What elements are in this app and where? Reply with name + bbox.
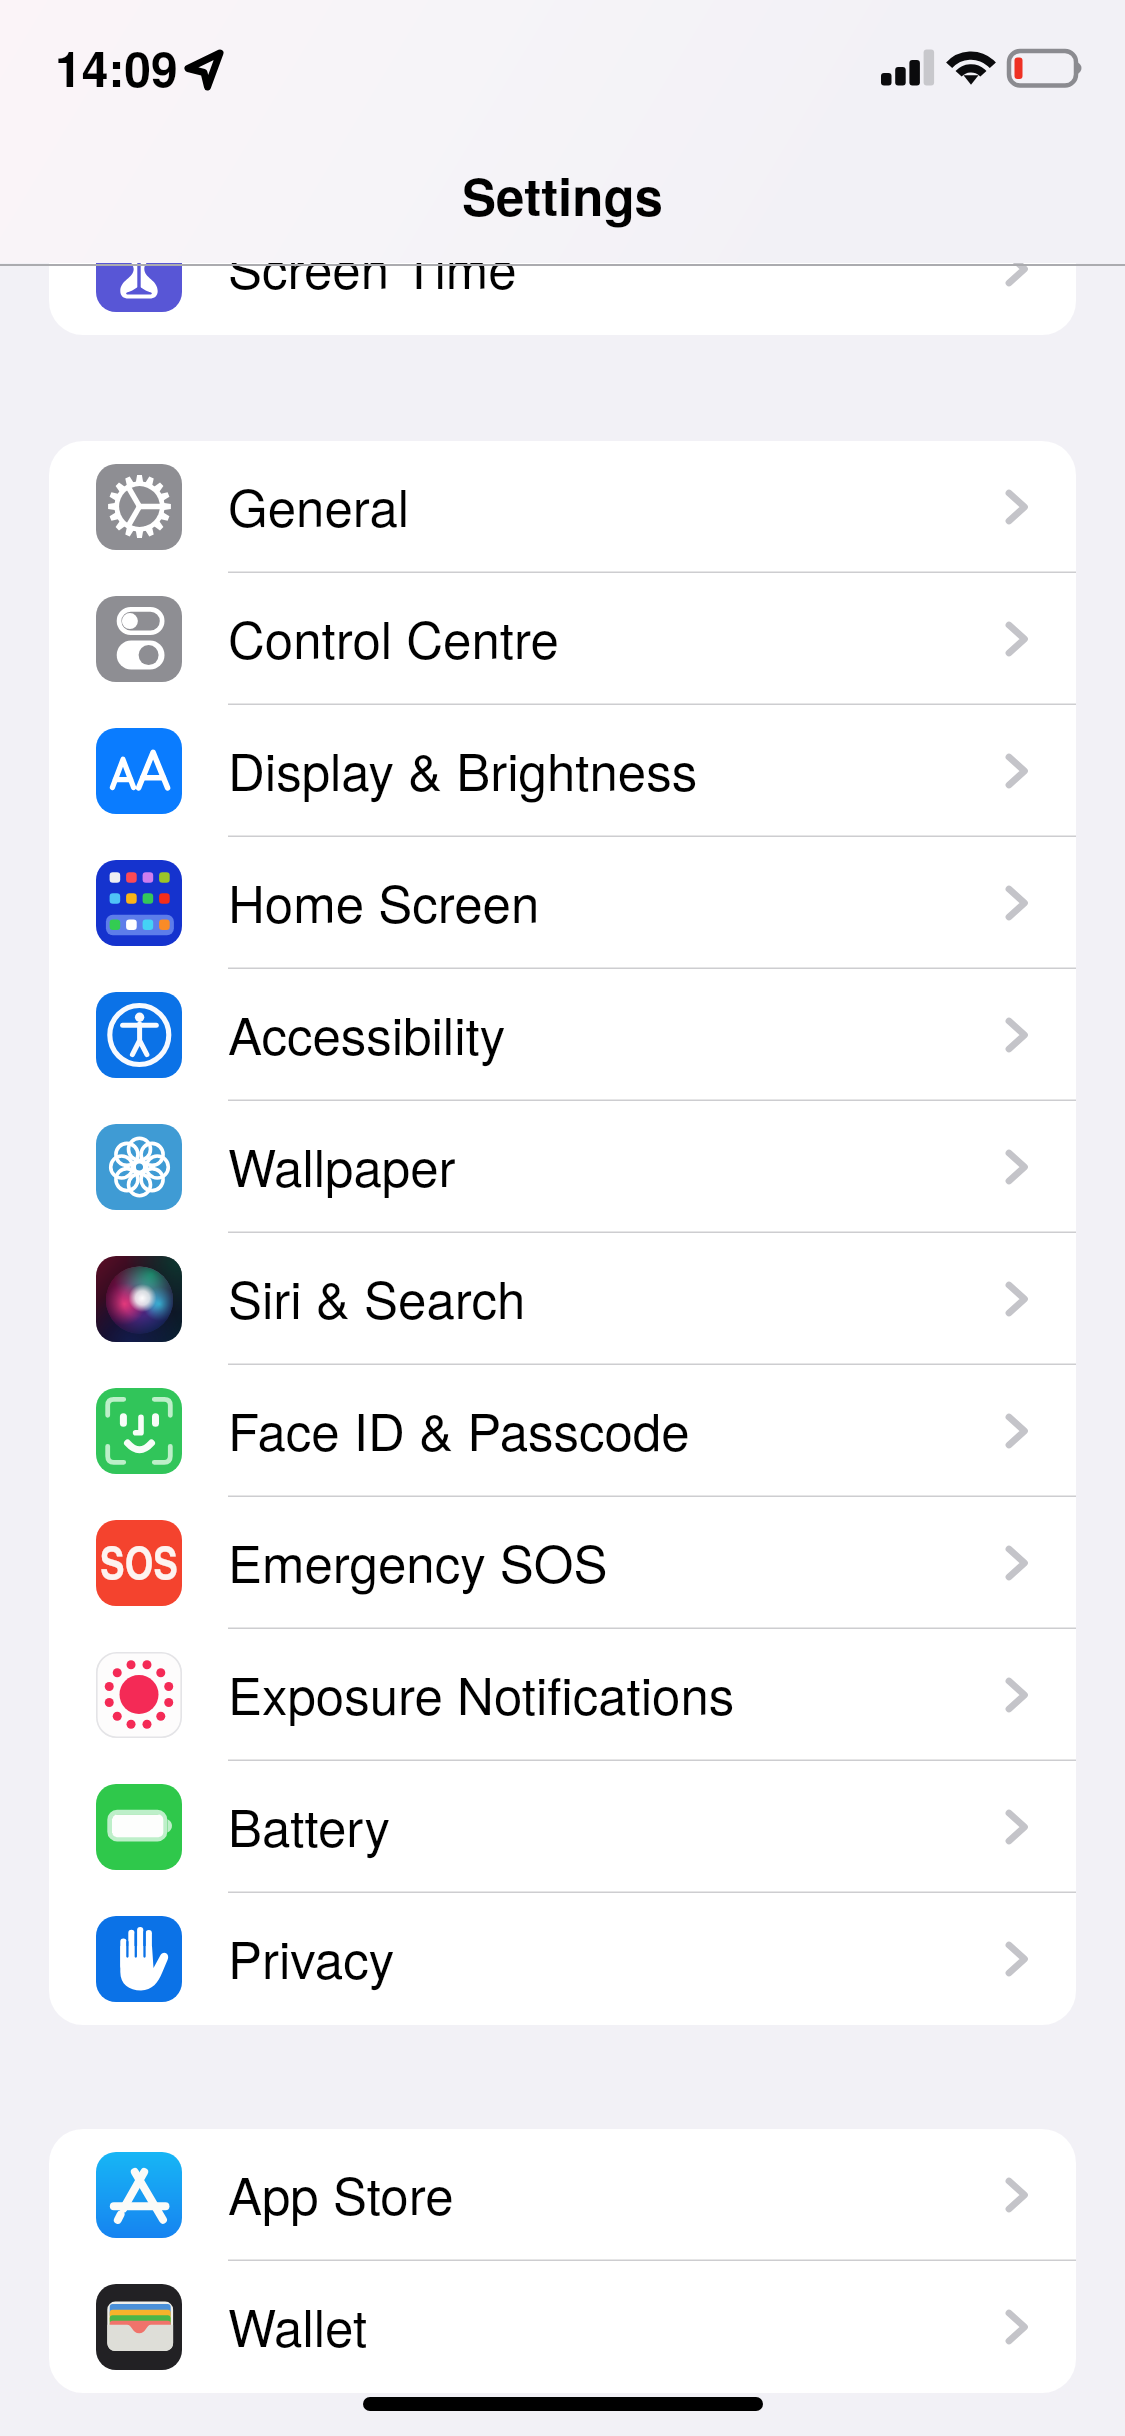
button[interactable]: Wallet [49,2261,1076,2393]
staticText: Emergency SOS [228,1524,608,1597]
staticText: Face ID & Passcode [228,1392,690,1465]
staticText: 14:09 [55,33,178,102]
button[interactable]: SOS [49,1497,1076,1629]
staticText: Exposure Notifications [228,1656,735,1729]
staticText: Screen Time [228,230,517,303]
button[interactable]: Wallpaper [49,1101,1076,1233]
staticText: Accessibility [228,996,506,1069]
staticText: SOS [96,1529,182,1593]
button[interactable]: Privacy [49,1893,1076,2025]
button[interactable]: App Store [49,2129,1076,2261]
staticText: General [228,468,410,541]
button[interactable]: Display & Brightness [49,705,1076,837]
staticText: App Store [228,2156,454,2229]
staticText: Privacy [228,1920,395,1993]
staticText: Battery [228,1788,391,1861]
button[interactable]: Battery [49,1761,1076,1893]
staticText: Control Centre [228,600,559,673]
staticText: Display & Brightness [228,732,698,805]
staticText: Siri & Search [228,1260,526,1333]
button[interactable]: Exposure Notifications [49,1629,1076,1761]
button[interactable]: Siri & Search [49,1233,1076,1365]
button[interactable]: Face ID & Passcode [49,1365,1076,1497]
staticText: Settings [0,159,1125,232]
button[interactable]: Home Screen [49,837,1076,969]
staticText: Home Screen [228,864,540,937]
button[interactable]: Screen Time [49,203,1076,335]
staticText: Wallpaper [228,1128,456,1201]
staticText: Wallet [228,2288,368,2361]
button[interactable]: Control Centre [49,573,1076,705]
button[interactable]: Accessibility [49,969,1076,1101]
button[interactable]: General [49,441,1076,573]
